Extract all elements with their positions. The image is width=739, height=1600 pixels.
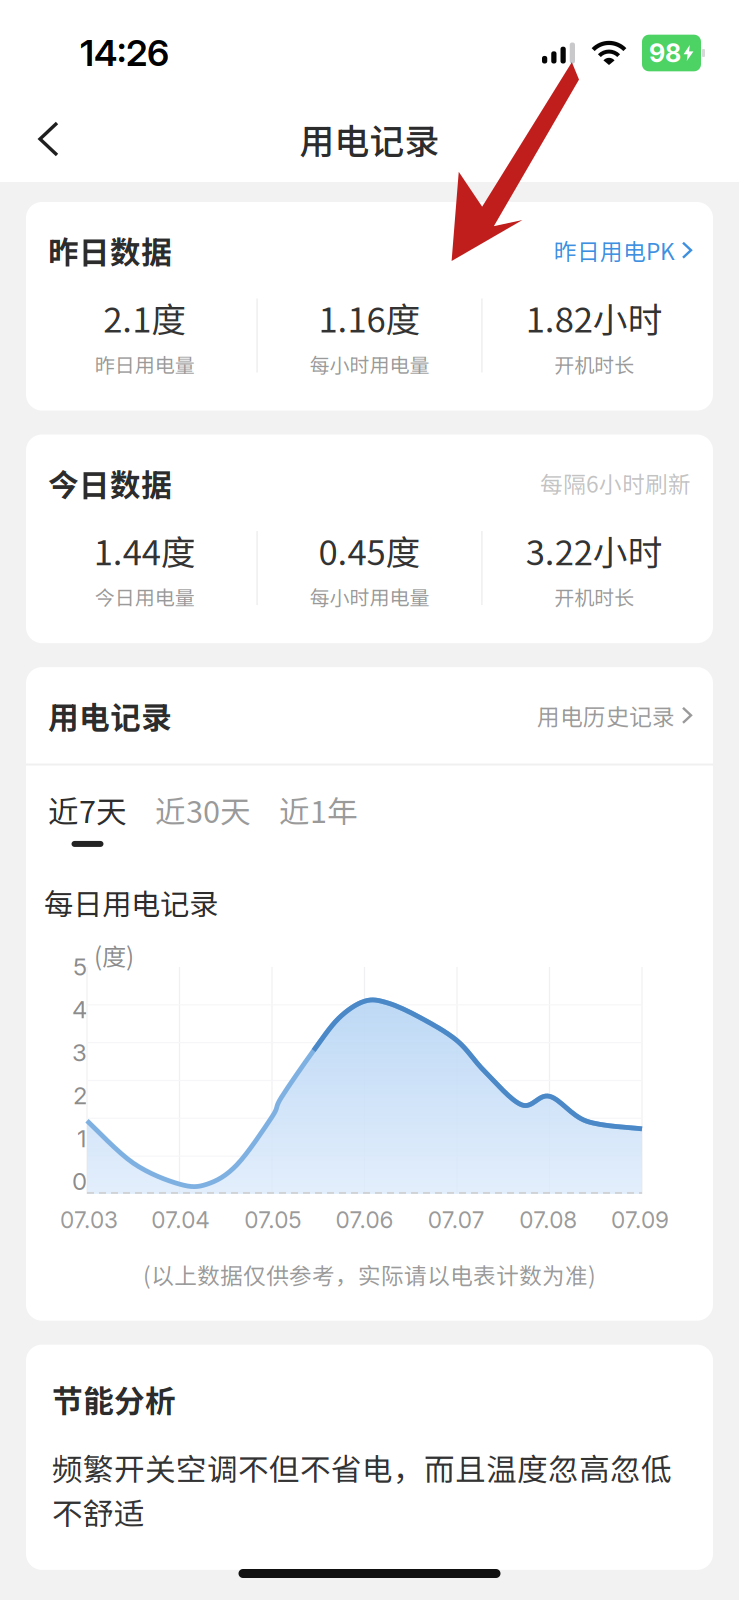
staticText: 0.45度 <box>318 525 420 575</box>
staticText: 每隔6小时刷新 <box>540 466 691 499</box>
button[interactable]: Back <box>22 105 75 173</box>
staticText: 用电历史记录 <box>537 699 675 732</box>
staticText: 开机时长 <box>554 350 634 379</box>
staticText: 3.22小时 <box>526 525 663 575</box>
staticText: 07.05 <box>244 1206 301 1234</box>
staticText: 07.07 <box>428 1206 485 1234</box>
staticText: 1.16度 <box>318 292 420 343</box>
staticText: (以上数据仅供参考，实际请以电表计数为准) <box>143 1258 596 1291</box>
staticText: (度) <box>94 938 134 973</box>
staticText: 今日数据 <box>48 461 172 505</box>
staticText: 1 <box>77 1124 87 1153</box>
staticText: 4 <box>72 995 87 1024</box>
staticText: 0 <box>72 1167 87 1196</box>
staticText: 1.82小时 <box>526 292 663 343</box>
staticText: 近7天 <box>48 787 127 832</box>
staticText: 昨日数据 <box>48 228 172 272</box>
staticText: 每小时用电量 <box>309 350 429 379</box>
staticText: 节能分析 <box>52 1377 176 1421</box>
staticText: 频繁开关空调不但不省电，而且温度忽高忽低不舒适 <box>52 1445 672 1534</box>
staticText: 5 <box>73 952 87 981</box>
staticText: 07.04 <box>151 1206 210 1234</box>
staticText: 今日用电量 <box>95 582 195 611</box>
staticText: 昨日用电PK <box>554 234 675 267</box>
staticText: 每小时用电量 <box>309 582 429 611</box>
staticText: 98 <box>649 38 681 68</box>
staticText: 07.06 <box>335 1206 393 1234</box>
staticText: 3 <box>72 1038 87 1067</box>
button[interactable]: 近1年 <box>279 765 358 832</box>
staticText: 昨日用电量 <box>95 350 195 379</box>
button[interactable]: 昨日用电PK <box>554 234 691 267</box>
staticText: 1.44度 <box>94 525 196 575</box>
staticText: 07.08 <box>519 1206 577 1234</box>
staticText: 近1年 <box>279 787 358 832</box>
staticText: 每日用电记录 <box>44 881 218 923</box>
staticText: 开机时长 <box>554 582 634 611</box>
staticText: 07.09 <box>611 1206 669 1234</box>
staticText: 07.03 <box>60 1206 118 1234</box>
staticText: 2 <box>73 1081 87 1110</box>
button[interactable]: 近30天 <box>155 765 251 832</box>
staticText: 2.1度 <box>103 292 186 343</box>
staticText: 用电记录 <box>299 114 439 164</box>
button[interactable]: 近7天 <box>48 765 127 859</box>
button[interactable]: 用电历史记录 <box>537 699 691 732</box>
staticText: 近30天 <box>155 787 251 832</box>
staticText: 14:26 <box>80 31 169 75</box>
staticText: 用电记录 <box>48 693 172 737</box>
